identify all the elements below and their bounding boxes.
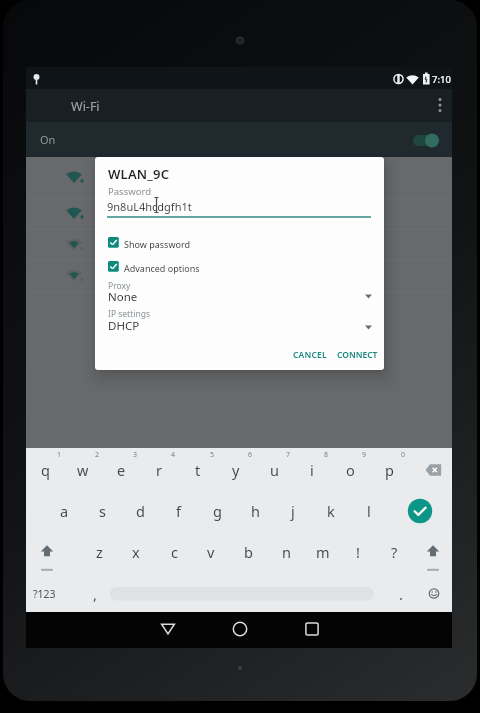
button[interactable] <box>102 231 302 253</box>
button[interactable]: c <box>157 534 191 570</box>
button[interactable]: r <box>142 452 176 488</box>
button[interactable]: f <box>161 493 195 529</box>
button[interactable]: e <box>104 452 138 488</box>
button[interactable] <box>102 255 302 277</box>
staticText: 4 <box>171 450 176 460</box>
staticText: On <box>40 132 56 147</box>
staticText: 0 <box>401 450 406 460</box>
button[interactable]: t <box>181 452 215 488</box>
button[interactable]: a <box>47 493 81 529</box>
button[interactable]: x <box>119 534 153 570</box>
staticText: j <box>291 501 295 521</box>
staticText: m <box>316 542 330 562</box>
staticText: h <box>251 501 260 521</box>
button[interactable] <box>405 453 452 487</box>
staticText: x <box>132 542 140 562</box>
staticText: 7:10 <box>432 73 451 86</box>
button[interactable]: CANCEL <box>293 349 327 361</box>
button[interactable] <box>294 613 330 646</box>
staticText: 2 <box>95 450 100 460</box>
staticText: f <box>176 501 181 521</box>
staticText: Show password <box>124 238 190 250</box>
button[interactable]: p <box>372 452 406 488</box>
button[interactable]: m <box>306 534 340 570</box>
staticText: n <box>282 542 291 562</box>
button[interactable]: o <box>333 452 367 488</box>
button[interactable] <box>416 535 450 569</box>
staticText: 5 <box>210 450 215 460</box>
button[interactable]: w <box>66 452 100 488</box>
button[interactable] <box>102 314 377 339</box>
button[interactable]: b <box>231 534 265 570</box>
button[interactable]: y <box>219 452 253 488</box>
staticText: r <box>156 460 162 480</box>
staticText: l <box>367 501 371 521</box>
button[interactable]: n <box>269 534 303 570</box>
button[interactable]: ! <box>341 534 375 570</box>
staticText: , <box>93 584 97 604</box>
button[interactable] <box>102 283 377 308</box>
staticText: u <box>270 460 279 480</box>
staticText: a <box>60 501 69 521</box>
staticText: 8 <box>324 450 329 460</box>
staticText: DHCP <box>108 318 140 334</box>
staticText: . <box>399 584 403 604</box>
staticText: IP settings <box>108 308 150 320</box>
button[interactable]: ?123 <box>25 576 63 612</box>
staticText: Wi-Fi <box>71 98 100 115</box>
button[interactable] <box>30 535 64 569</box>
button[interactable]: d <box>123 493 157 529</box>
button[interactable] <box>26 122 452 157</box>
staticText: 9 <box>362 450 367 460</box>
button[interactable]: h <box>238 493 272 529</box>
button[interactable] <box>405 494 439 528</box>
staticText: v <box>207 542 215 562</box>
staticText: 7 <box>286 450 291 460</box>
staticText: q <box>41 460 50 480</box>
staticText: w <box>77 460 89 480</box>
button[interactable]: k <box>314 493 348 529</box>
button[interactable]: j <box>276 493 310 529</box>
button[interactable]: CONNECT <box>337 349 378 361</box>
staticText: c <box>171 542 178 562</box>
button[interactable]: . <box>384 576 418 612</box>
button[interactable]: u <box>257 452 291 488</box>
staticText: 9n8uL4hcdgfh1t <box>107 199 192 214</box>
button[interactable]: l <box>352 493 386 529</box>
staticText: t <box>195 460 201 480</box>
button[interactable]: i <box>295 452 329 488</box>
button[interactable] <box>222 613 258 646</box>
button[interactable]: q <box>28 452 62 488</box>
button[interactable] <box>150 613 186 646</box>
button[interactable] <box>417 577 451 610</box>
button[interactable]: , <box>78 576 112 612</box>
button[interactable] <box>418 92 448 119</box>
button[interactable]: s <box>85 493 119 529</box>
staticText: Password <box>108 185 151 198</box>
staticText: o <box>346 460 355 480</box>
staticText: s <box>99 501 106 521</box>
staticText: 1 <box>57 450 62 460</box>
button[interactable]: z <box>82 534 116 570</box>
button[interactable]: ? <box>377 534 411 570</box>
staticText: ?123 <box>33 587 56 601</box>
staticText: None <box>108 289 138 305</box>
button[interactable] <box>404 128 448 153</box>
staticText: z <box>96 542 103 562</box>
staticText: e <box>117 460 126 480</box>
staticText: p <box>385 460 394 480</box>
button[interactable] <box>110 580 374 607</box>
staticText: y <box>232 460 240 480</box>
staticText: g <box>213 501 222 521</box>
staticText: Proxy <box>108 280 131 292</box>
button[interactable]: v <box>194 534 228 570</box>
staticText: b <box>244 542 253 562</box>
staticText: d <box>136 501 145 521</box>
staticText: i <box>310 460 314 480</box>
button[interactable]: g <box>200 493 234 529</box>
staticText: ? <box>391 542 398 562</box>
staticText: ! <box>356 542 360 562</box>
staticText: Advanced options <box>124 262 200 274</box>
staticText: 6 <box>248 450 253 460</box>
staticText: k <box>327 501 335 521</box>
